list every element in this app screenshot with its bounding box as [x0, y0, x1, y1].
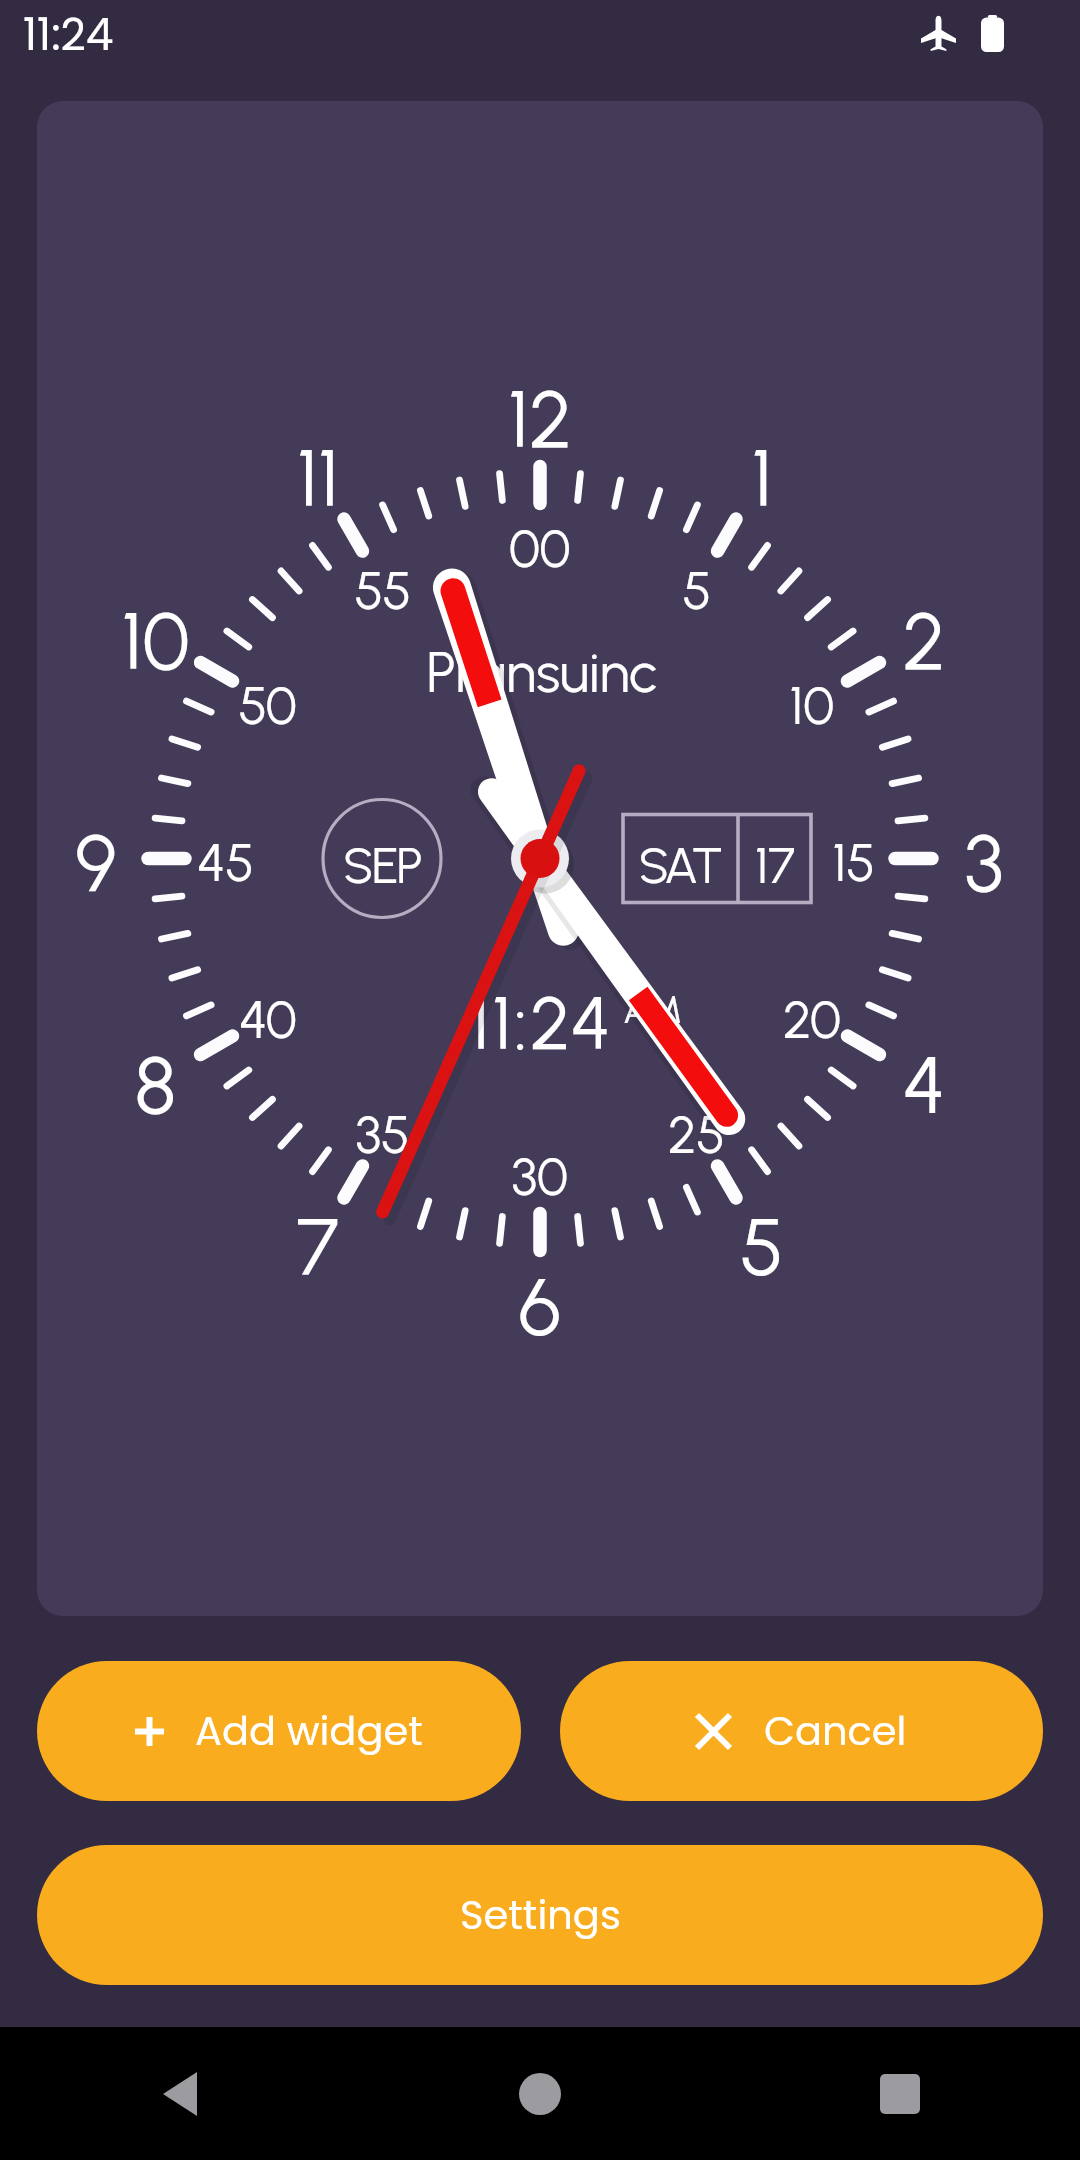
button[interactable]: Add widget — [37, 1661, 521, 1801]
button[interactable]: Settings — [37, 1845, 1043, 1985]
staticText: 11:24 — [23, 4, 114, 66]
staticText: Add widget — [195, 1703, 423, 1759]
staticText: Cancel — [764, 1703, 907, 1759]
staticText: Settings — [460, 1887, 621, 1943]
button[interactable]: Home — [485, 2039, 595, 2149]
button[interactable]: Back — [125, 2039, 235, 2149]
button[interactable]: Cancel — [560, 1661, 1043, 1801]
button[interactable]: Recent apps — [845, 2039, 955, 2149]
